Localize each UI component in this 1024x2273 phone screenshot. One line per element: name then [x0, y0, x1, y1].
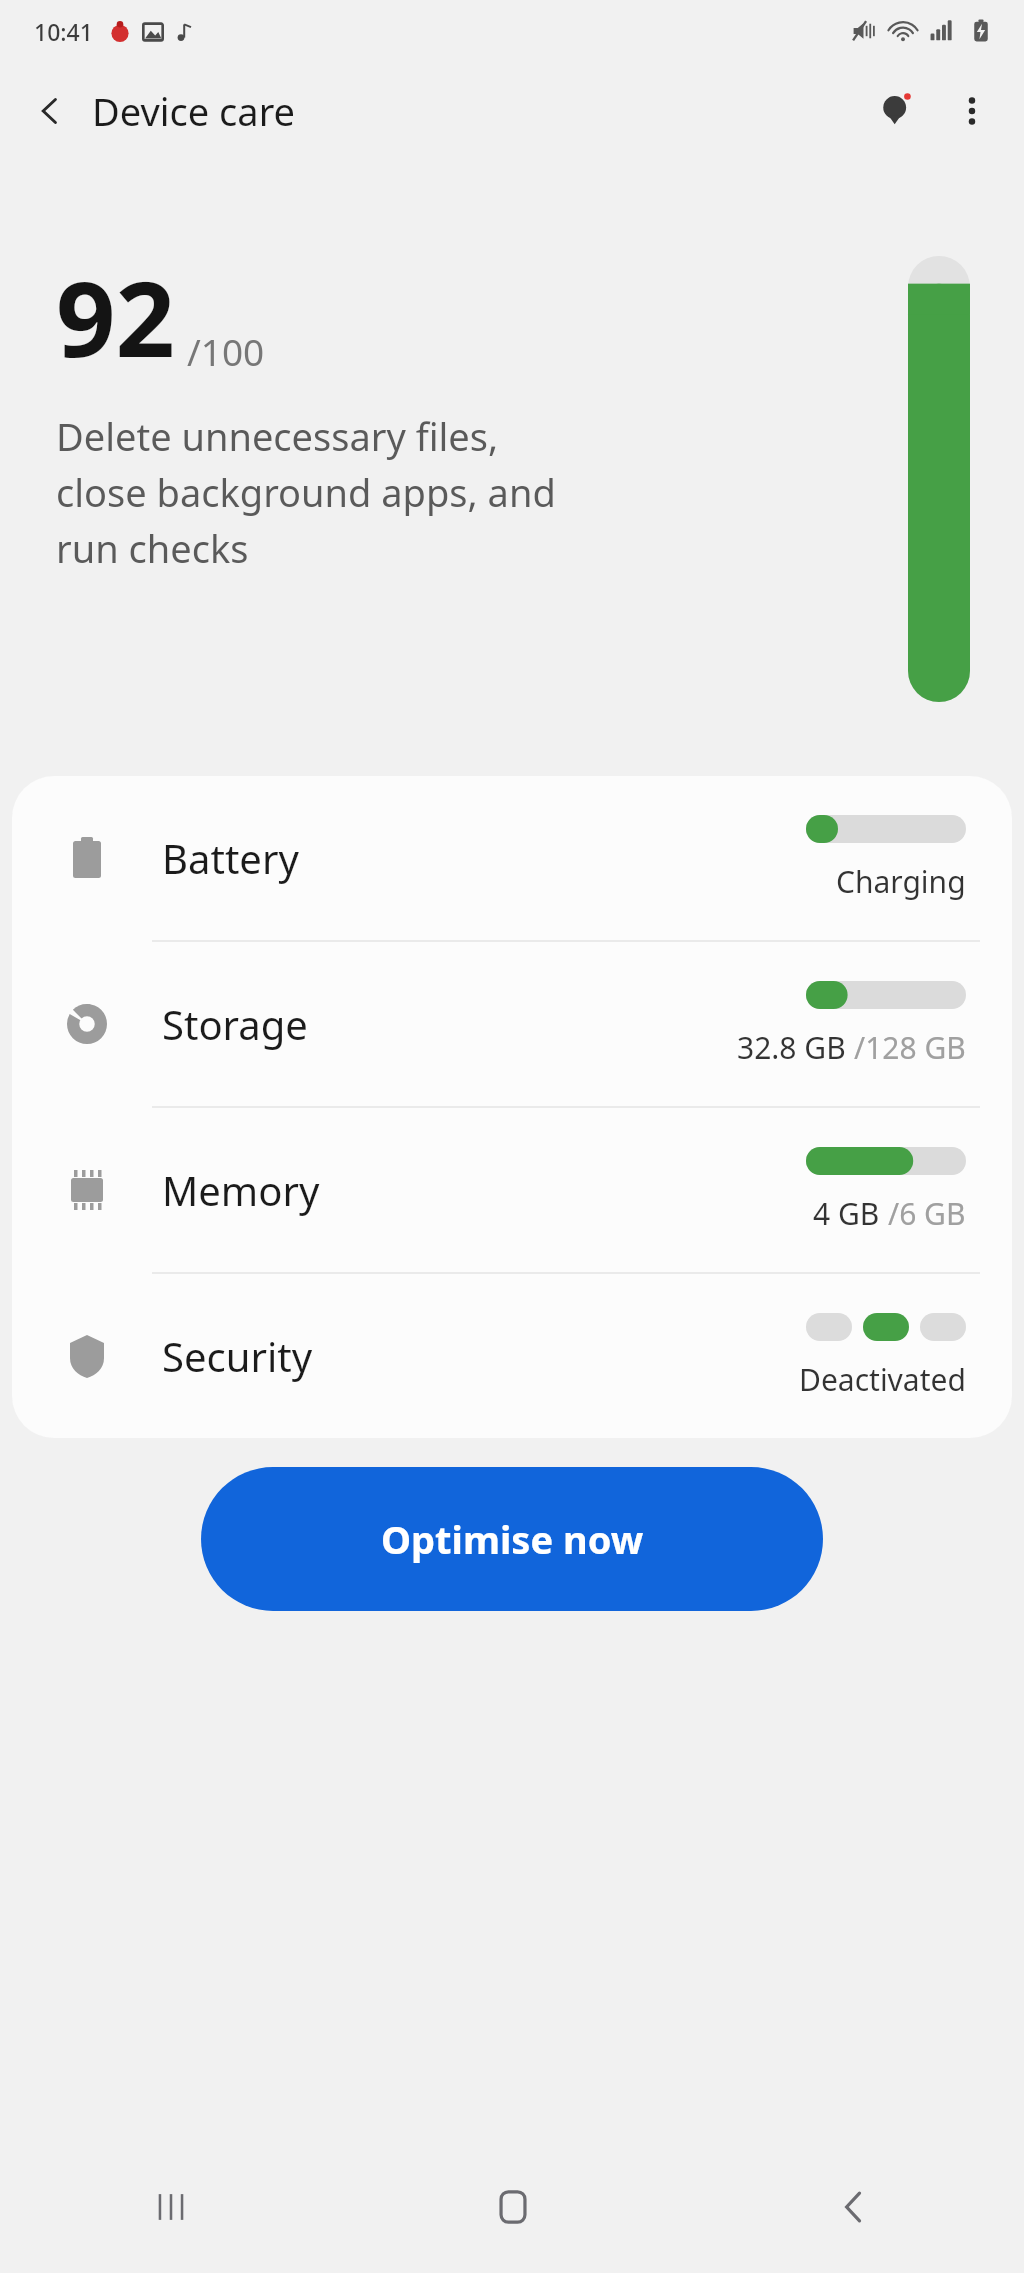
staticText: 10:41	[34, 16, 93, 47]
staticText: Charging	[836, 861, 966, 902]
staticText: Memory	[162, 1163, 320, 1217]
button[interactable]: Back	[683, 2141, 1024, 2273]
staticText: 32.8 GB	[737, 1027, 854, 1068]
staticText: Delete unnecessary files, close backgrou…	[56, 410, 556, 574]
staticText: Battery	[162, 831, 299, 885]
button[interactable]: Optimise now	[201, 1467, 823, 1611]
staticText: /128 GB	[854, 1027, 966, 1068]
button[interactable]: More options	[934, 73, 1010, 149]
staticText: 92	[56, 246, 175, 388]
staticText: /100	[187, 326, 265, 376]
staticText: 4 GB	[813, 1193, 888, 1234]
button[interactable]: Recents	[0, 2141, 342, 2273]
button[interactable]: Battery	[12, 776, 1012, 940]
staticText: /6 GB	[888, 1193, 966, 1234]
staticText: Security	[162, 1329, 313, 1383]
button[interactable]: Security	[12, 1274, 1012, 1438]
staticText: Deactivated	[799, 1359, 966, 1400]
staticText: Device care	[92, 85, 295, 137]
staticText: Storage	[162, 997, 308, 1051]
button[interactable]: Memory	[12, 1108, 1012, 1272]
staticText: Optimise now	[381, 1513, 644, 1565]
button[interactable]: Storage	[12, 942, 1012, 1106]
button[interactable]: Tips	[858, 73, 934, 149]
button[interactable]: Home	[342, 2141, 683, 2273]
button[interactable]: Back	[18, 79, 82, 143]
